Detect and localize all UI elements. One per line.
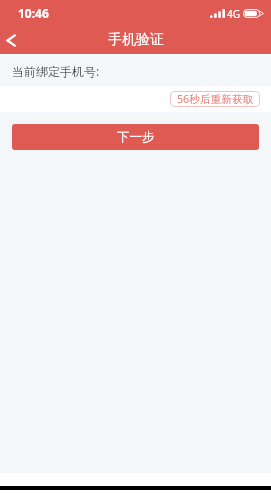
button[interactable]: 下一步 xyxy=(12,124,259,150)
button[interactable]: Back xyxy=(0,27,24,53)
staticText: 10:46 xyxy=(18,5,49,21)
staticText: 56秒后重新获取 xyxy=(177,92,254,107)
staticText: 4G xyxy=(227,7,240,21)
staticText: 手机验证 xyxy=(108,31,164,49)
staticText: 当前绑定手机号: xyxy=(12,63,100,79)
button[interactable]: 56秒后重新获取 xyxy=(170,91,260,107)
staticText: 下一步 xyxy=(117,129,155,145)
